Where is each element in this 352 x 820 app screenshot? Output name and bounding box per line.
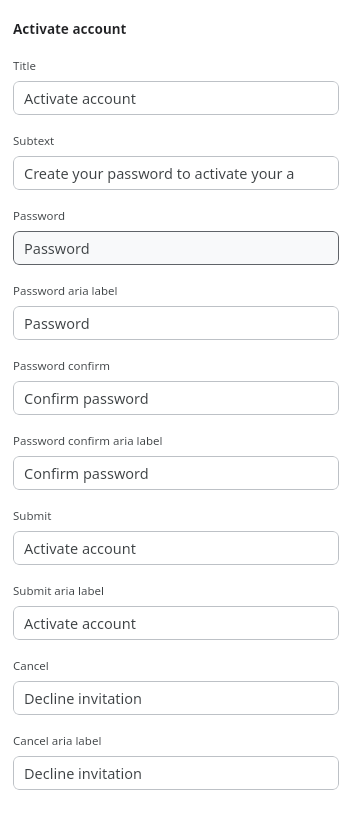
button[interactable]: Activate account xyxy=(13,81,339,115)
button[interactable]: Confirm password xyxy=(13,456,339,490)
staticText: Create your password to activate your a xyxy=(24,163,295,183)
staticText: Submit aria label xyxy=(13,583,104,599)
button[interactable]: Activate account xyxy=(13,606,339,640)
staticText: Password xyxy=(24,313,90,333)
staticText: Activate account xyxy=(24,88,136,108)
button[interactable]: Password xyxy=(13,231,339,265)
staticText: Cancel aria label xyxy=(13,733,102,749)
staticText: Activate account xyxy=(13,20,127,38)
staticText: Activate account xyxy=(24,613,136,633)
staticText: Submit xyxy=(13,508,52,524)
staticText: Cancel xyxy=(13,658,49,674)
staticText: Password xyxy=(13,208,66,224)
button[interactable]: Activate account xyxy=(13,531,339,565)
staticText: Title xyxy=(13,58,36,74)
button[interactable]: Decline invitation xyxy=(13,756,339,790)
staticText: Confirm password xyxy=(24,463,149,483)
staticText: Confirm password xyxy=(24,388,149,408)
staticText: Decline invitation xyxy=(24,763,143,783)
button[interactable]: Password xyxy=(13,306,339,340)
staticText: Password confirm aria label xyxy=(13,433,163,449)
staticText: Password xyxy=(24,238,90,258)
button[interactable]: Create your password to activate your a xyxy=(13,156,339,190)
staticText: Password aria label xyxy=(13,283,118,299)
button[interactable]: Decline invitation xyxy=(13,681,339,715)
staticText: Decline invitation xyxy=(24,688,143,708)
staticText: Subtext xyxy=(13,133,55,149)
button[interactable]: Confirm password xyxy=(13,381,339,415)
staticText: Password confirm xyxy=(13,358,111,374)
staticText: Activate account xyxy=(24,538,136,558)
